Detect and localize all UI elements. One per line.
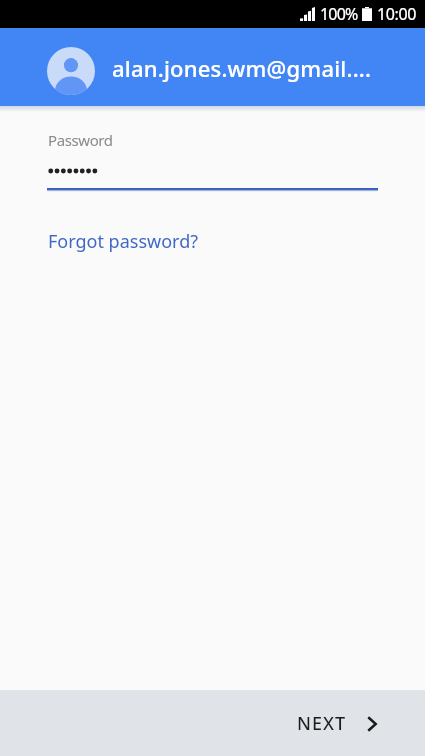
staticText: alan.jones.wm@gmail.... <box>112 53 372 83</box>
button[interactable]: Switch account <box>47 47 95 95</box>
staticText: Password <box>48 130 113 150</box>
button[interactable]: Forgot password? <box>40 225 213 260</box>
staticText: NEXT <box>297 711 347 736</box>
staticText: Forgot password? <box>48 229 199 254</box>
staticText: 100% <box>320 3 358 25</box>
staticText: 10:00 <box>377 3 416 25</box>
button[interactable]: NEXT <box>267 698 425 749</box>
button[interactable]: Password field <box>40 120 385 196</box>
